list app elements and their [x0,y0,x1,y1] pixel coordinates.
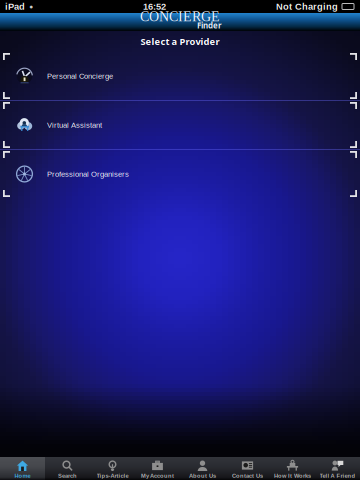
staticText: Tips-Article [96,472,128,479]
button[interactable]: Personal Concierge [0,52,360,100]
button[interactable]: My Account [135,457,180,480]
staticText: Professional Organisers [47,170,129,178]
button[interactable]: Professional Organisers [0,150,360,198]
button[interactable]: Tell A Friend [315,457,360,480]
button[interactable]: Search [45,457,90,480]
button[interactable]: Contact Us [225,457,270,480]
staticText: My Account [141,472,174,479]
button[interactable]: About Us [180,457,225,480]
staticText: Contact Us [232,472,263,479]
staticText: Search [58,472,77,479]
button[interactable]: Tips-Article [90,457,135,480]
staticText: How It Works [274,472,311,479]
staticText: 16:52 [143,1,166,12]
staticText: Personal Concierge [47,72,113,80]
staticText: Virtual Assistant [47,121,102,129]
staticText: Home [14,472,30,479]
staticText: About Us [189,472,216,479]
staticText: Tell A Friend [319,472,355,479]
staticText: Finder [197,20,222,31]
staticText: iPad [5,1,25,12]
button[interactable]: Home [0,457,45,480]
button[interactable]: How It Works [270,457,315,480]
button[interactable]: Virtual Assistant [0,101,360,149]
staticText: Not Charging [276,1,338,12]
staticText: ● [29,3,33,10]
staticText: Select a Provider [140,35,219,48]
staticText: CONCIERGE [140,9,220,24]
